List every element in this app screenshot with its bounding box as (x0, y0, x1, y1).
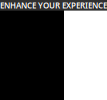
staticText: ENHANCE YOUR EXPERIENCE (0, 0, 107, 11)
